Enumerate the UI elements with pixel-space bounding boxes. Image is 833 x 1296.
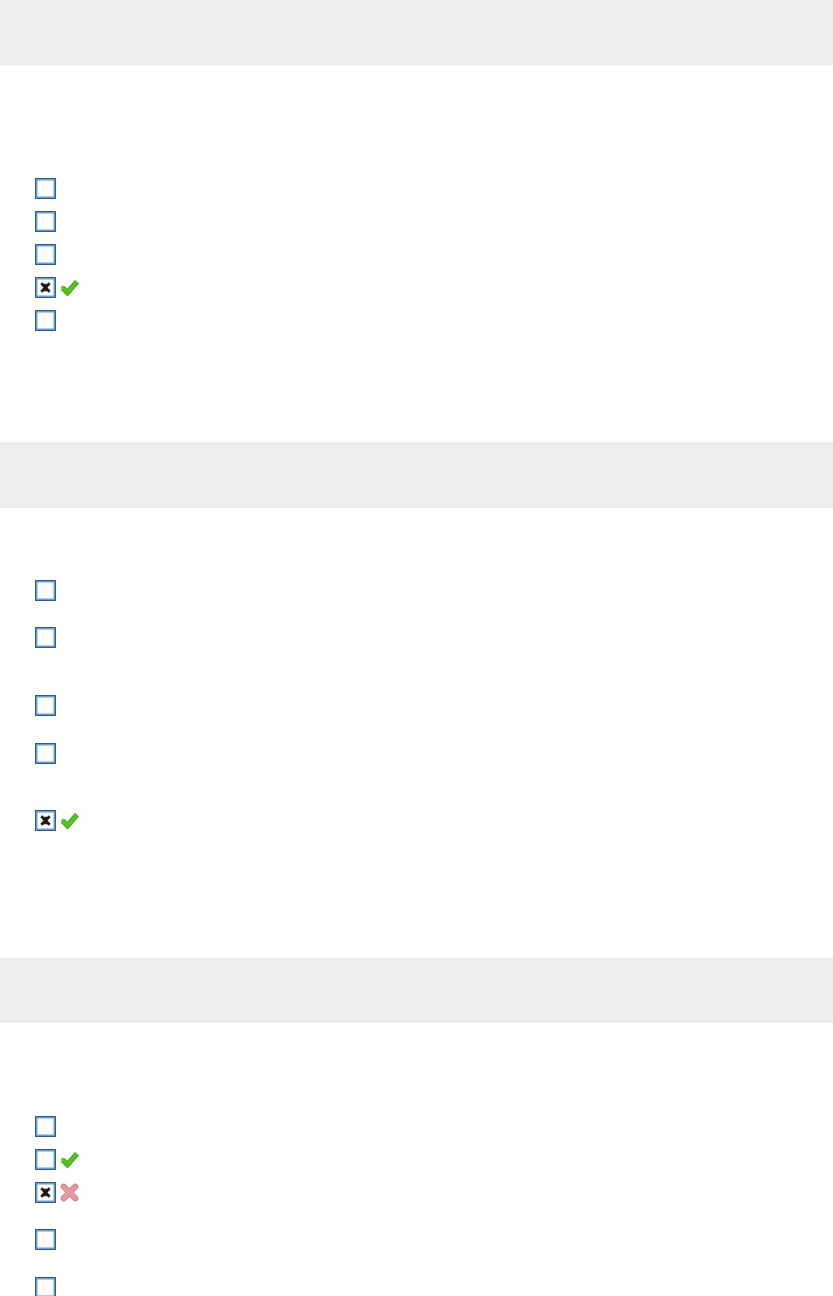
button[interactable]: Option 3 E bbox=[35, 1277, 56, 1296]
button[interactable]: Option 1 B bbox=[35, 211, 56, 232]
button[interactable]: Option 3 C selected bbox=[35, 1182, 56, 1203]
other: Incorrect bbox=[61, 1184, 78, 1201]
button[interactable]: Option 3 B correct bbox=[35, 1149, 56, 1170]
button[interactable]: Option 3 A bbox=[35, 1116, 56, 1137]
button[interactable]: Option 2 C bbox=[35, 695, 56, 716]
button[interactable]: Option 3 D bbox=[35, 1229, 56, 1250]
button[interactable]: Option 2 B bbox=[35, 627, 56, 648]
other: Correct bbox=[61, 812, 78, 829]
other: Correct bbox=[61, 279, 78, 296]
button[interactable]: Option 1 D selected bbox=[35, 277, 56, 298]
button[interactable]: Option 1 A bbox=[35, 178, 56, 199]
button[interactable]: Option 1 E bbox=[35, 310, 56, 331]
other: Correct bbox=[61, 1151, 78, 1168]
button[interactable]: Option 2 D bbox=[35, 743, 56, 764]
button[interactable]: Option 1 C bbox=[35, 244, 56, 265]
button[interactable]: Option 2 E selected bbox=[35, 810, 56, 831]
button[interactable]: Option 2 A bbox=[35, 580, 56, 601]
